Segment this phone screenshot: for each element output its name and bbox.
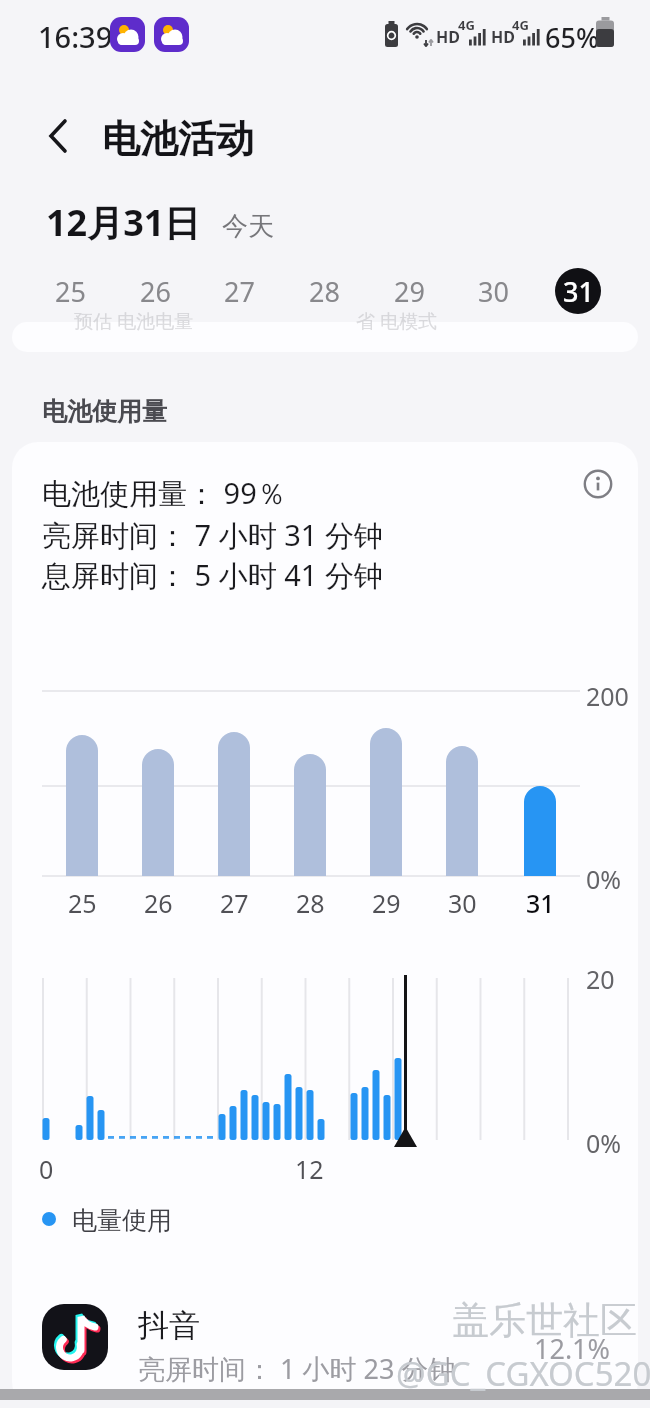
button[interactable]: 25 xyxy=(40,266,100,316)
staticText: 12月31日 xyxy=(46,198,201,247)
staticText: 20 xyxy=(586,962,615,996)
staticText: 预估 电池电量 xyxy=(74,308,193,334)
staticText: 盖乐世社区 xyxy=(452,1297,637,1344)
button[interactable]: 30 xyxy=(463,266,523,316)
button[interactable]: 29 xyxy=(379,266,439,316)
staticText: 电量使用 xyxy=(72,1205,172,1236)
staticText: 31 xyxy=(563,273,594,310)
staticText: 电池使用量 xyxy=(42,396,167,427)
staticText: 亮屏时间： 1 小时 23 分钟 xyxy=(138,1350,456,1387)
staticText: HD xyxy=(436,26,460,48)
staticText: 65% xyxy=(545,19,599,56)
button[interactable] xyxy=(24,1292,624,1384)
staticText: 30 xyxy=(448,886,477,918)
staticText: 31 xyxy=(526,886,555,918)
staticText: @GC_CGXOC520 xyxy=(396,1351,650,1396)
button[interactable]: 26 xyxy=(125,266,185,316)
button[interactable] xyxy=(582,468,614,500)
staticText: 电池活动 xyxy=(102,115,254,163)
staticText: 16:39 xyxy=(38,17,113,56)
staticText: 25 xyxy=(55,273,86,310)
button[interactable] xyxy=(36,112,80,160)
staticText: 亮屏时间： 7 小时 31 分钟 xyxy=(42,515,383,555)
staticText: 息屏时间： 5 小时 41 分钟 xyxy=(42,555,383,595)
staticText: 29 xyxy=(394,273,425,310)
staticText: 0% xyxy=(586,862,622,896)
staticText: 29 xyxy=(372,886,401,918)
button[interactable]: 28 xyxy=(294,266,354,316)
staticText: 0% xyxy=(586,1126,622,1160)
staticText: 26 xyxy=(140,273,171,310)
staticText: 0 xyxy=(39,1152,54,1182)
staticText: 25 xyxy=(68,886,97,918)
staticText: 28 xyxy=(296,886,325,918)
staticText: 12.1% xyxy=(534,1330,611,1367)
staticText: 27 xyxy=(224,273,255,310)
staticText: 28 xyxy=(309,273,340,310)
button[interactable]: 27 xyxy=(209,266,269,316)
staticText: 电池使用量： 99％ xyxy=(42,473,286,513)
staticText: 12 xyxy=(295,1152,324,1182)
staticText: 200 xyxy=(586,679,629,713)
button[interactable]: 31 xyxy=(555,268,601,314)
staticText: 今天 xyxy=(222,210,274,243)
staticText: 4G xyxy=(458,16,475,34)
staticText: 27 xyxy=(220,886,249,918)
staticText: 抖音 xyxy=(138,1306,200,1345)
staticText: 4G xyxy=(512,16,529,34)
staticText: 26 xyxy=(144,886,173,918)
staticText: 省 电模式 xyxy=(356,308,437,334)
staticText: 30 xyxy=(478,273,509,310)
staticText: HD xyxy=(491,26,515,48)
